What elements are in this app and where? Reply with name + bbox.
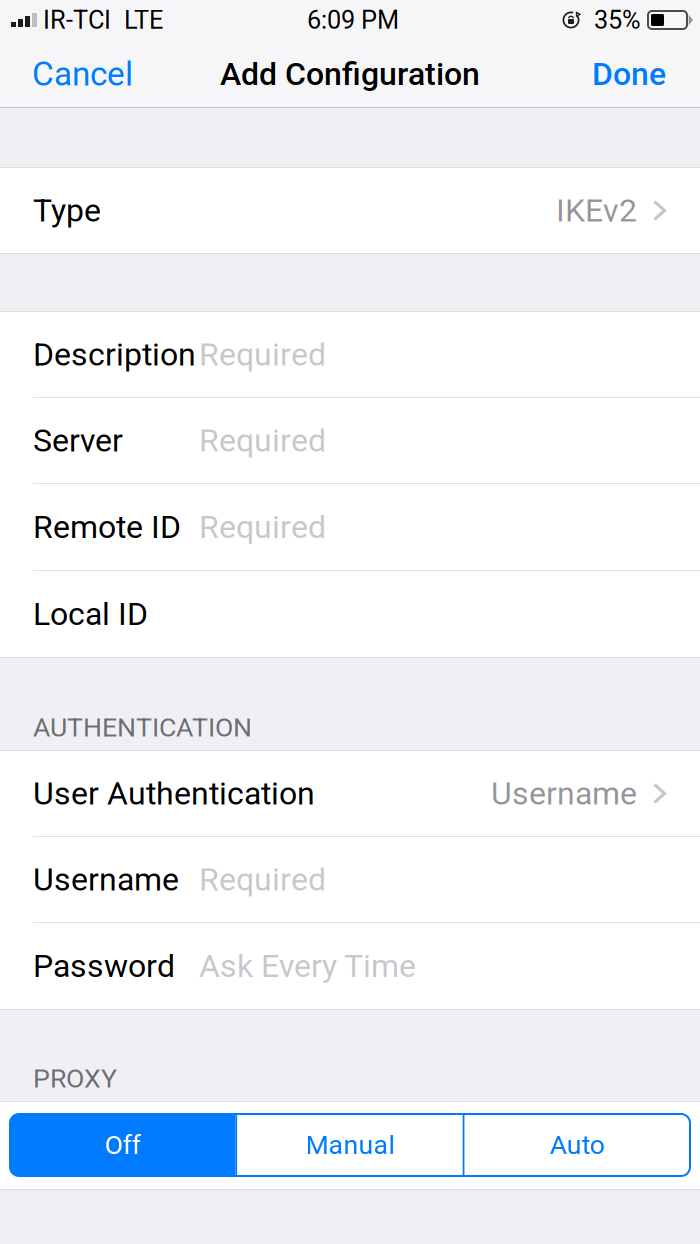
staticText: Local ID [33,595,148,633]
staticText: Required [199,422,326,459]
button[interactable]: Cancel [20,44,145,104]
staticText: Done [592,55,666,93]
staticText: Off [105,1129,141,1161]
staticText: Ask Every Time [199,947,416,985]
staticText: 35% [594,5,641,35]
staticText: Cancel [32,54,133,94]
button[interactable]: User Authentication [0,751,700,836]
staticText: Username [491,775,637,812]
button[interactable]: Manual [237,1114,463,1176]
staticText: Username [33,861,179,898]
staticText: AUTHENTICATION [33,712,252,743]
button[interactable]: Description [0,312,700,397]
staticText: Auto [550,1129,605,1161]
staticText: Required [199,336,326,373]
staticText: PROXY [33,1063,117,1094]
staticText: LTE [124,5,163,35]
staticText: Manual [305,1129,394,1161]
staticText: Required [199,861,326,898]
button[interactable]: Off [10,1114,235,1176]
button[interactable]: Password [0,923,700,1009]
staticText: Required [199,508,326,546]
staticText: Password [33,947,175,985]
button[interactable]: Remote ID [0,484,700,570]
staticText: IR-TCI [43,5,111,35]
staticText: Add Configuration [220,55,480,93]
button[interactable]: Type [0,168,700,253]
button[interactable]: Username [0,837,700,922]
staticText: User Authentication [33,775,315,812]
button[interactable]: Auto [465,1114,690,1176]
staticText: IKEv2 [556,192,637,229]
staticText: Remote ID [33,508,181,546]
button[interactable]: Server [0,398,700,483]
button[interactable]: Local ID [0,571,700,657]
staticText: Server [33,422,123,459]
staticText: Type [33,192,101,229]
staticText: Description [33,336,196,373]
staticText: 6:09 PM [307,5,399,35]
button[interactable]: Done [580,45,678,103]
